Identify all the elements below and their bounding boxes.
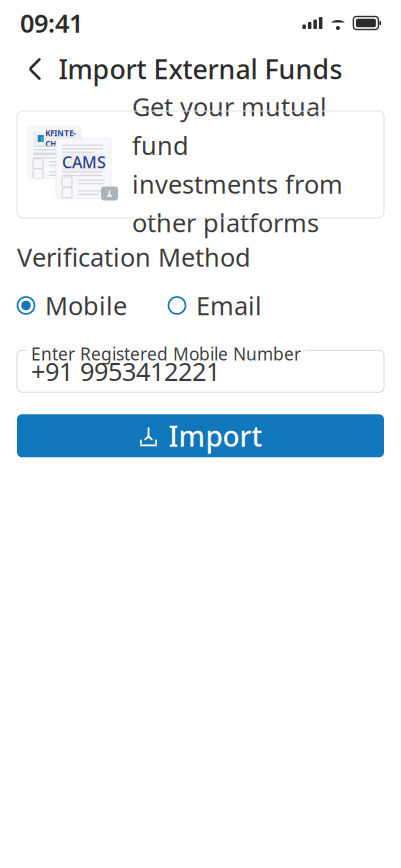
button[interactable]: Import <box>17 414 384 457</box>
staticText: 09:41 <box>20 6 83 40</box>
button[interactable]: Enter Registered Mobile Number <box>17 350 384 392</box>
staticText: Get your mutual fund investments from ot… <box>132 90 343 239</box>
staticText: Mobile <box>45 289 127 322</box>
staticText: +91 9953412221 <box>31 354 220 388</box>
button[interactable]: Back <box>14 48 56 90</box>
staticText: Enter Registered Mobile Number <box>31 342 301 365</box>
staticText: Import <box>168 417 262 454</box>
staticText: CAMS <box>62 151 106 173</box>
staticText: Import External Funds <box>58 51 342 87</box>
staticText: KFINTECH <box>45 128 76 149</box>
button[interactable]: Mobile <box>17 285 127 326</box>
staticText: Email <box>196 289 262 322</box>
button[interactable]: Email <box>168 285 262 326</box>
staticText: Verification Method <box>17 240 251 274</box>
